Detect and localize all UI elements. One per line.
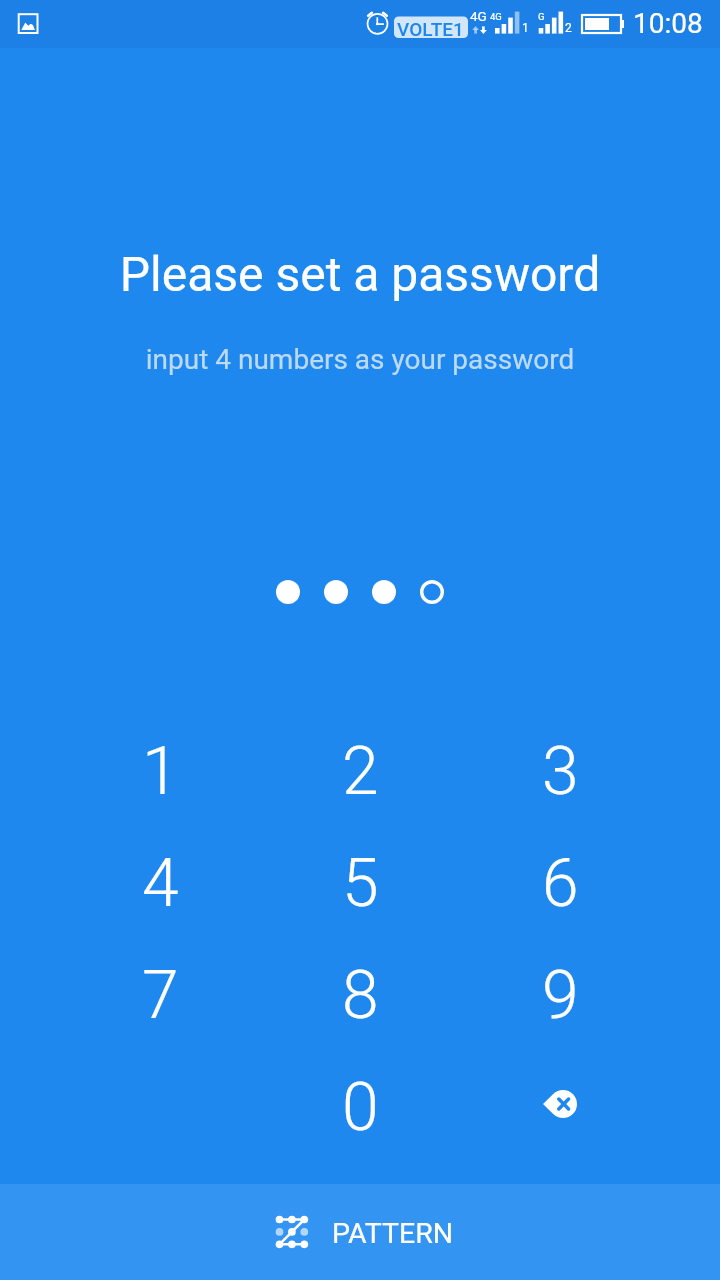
staticText: 6 bbox=[542, 845, 579, 922]
staticText: VOLTE1 bbox=[397, 18, 464, 40]
staticText: 0 bbox=[342, 1069, 379, 1146]
staticText: 5 bbox=[342, 845, 379, 922]
staticText: 4 bbox=[142, 845, 179, 922]
staticText: 2 bbox=[342, 733, 379, 810]
staticText: 7 bbox=[142, 957, 179, 1034]
staticText: 1 bbox=[522, 21, 529, 35]
staticText: 9 bbox=[542, 957, 579, 1034]
staticText: input 4 numbers as your password bbox=[0, 343, 720, 376]
button[interactable]: Delete bbox=[460, 1051, 660, 1163]
button[interactable]: 9 bbox=[460, 939, 660, 1051]
staticText: 8 bbox=[342, 957, 379, 1034]
button[interactable]: PATTERN bbox=[0, 1184, 720, 1280]
staticText: 1 bbox=[142, 733, 179, 810]
button[interactable]: 4 bbox=[60, 827, 260, 939]
button[interactable]: 3 bbox=[460, 715, 660, 827]
staticText: 3 bbox=[542, 733, 579, 810]
staticText: 4G bbox=[490, 11, 502, 22]
button[interactable]: 7 bbox=[60, 939, 260, 1051]
staticText: G bbox=[538, 11, 545, 22]
staticText: Please set a password bbox=[0, 246, 720, 302]
button[interactable]: 6 bbox=[460, 827, 660, 939]
staticText: 2 bbox=[565, 21, 572, 35]
button[interactable]: 5 bbox=[260, 827, 460, 939]
staticText: 4G bbox=[470, 8, 487, 24]
button[interactable]: 0 bbox=[260, 1051, 460, 1163]
staticText: PATTERN bbox=[332, 1217, 454, 1250]
button[interactable]: 2 bbox=[260, 715, 460, 827]
button[interactable]: 1 bbox=[60, 715, 260, 827]
staticText: 10:08 bbox=[633, 7, 703, 40]
button[interactable]: 8 bbox=[260, 939, 460, 1051]
